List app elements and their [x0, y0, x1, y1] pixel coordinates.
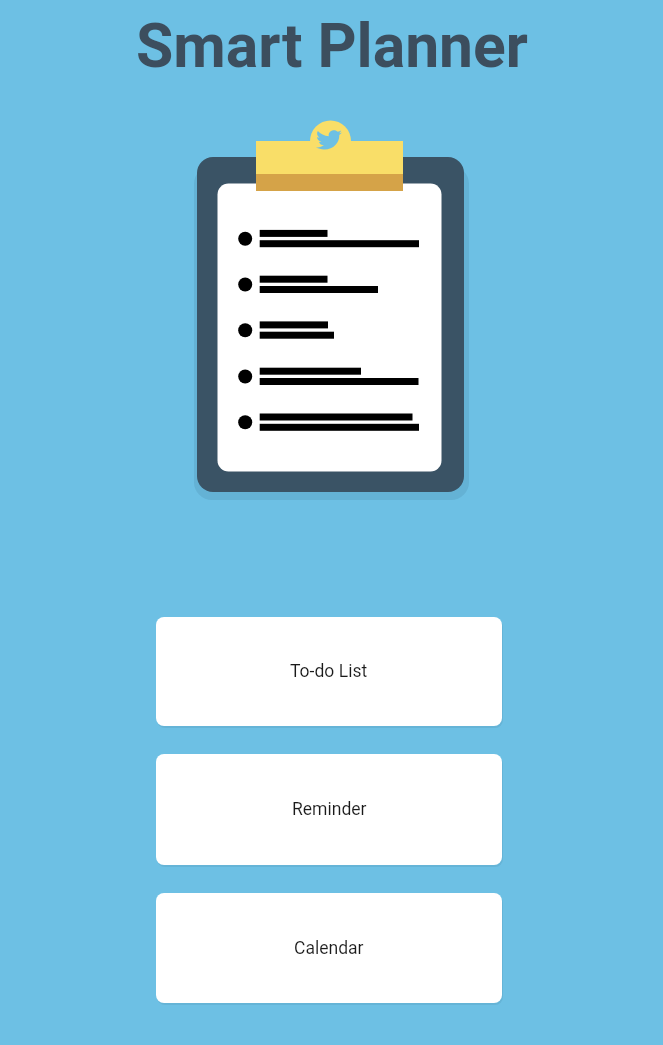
- other: Planner checklist illustration: [185, 110, 485, 510]
- staticText: Smart Planner: [136, 11, 528, 82]
- button[interactable]: To-do List: [156, 617, 502, 726]
- staticText: Reminder: [292, 799, 367, 820]
- staticText: Calendar: [294, 938, 364, 959]
- staticText: To-do List: [290, 661, 368, 682]
- button[interactable]: Reminder: [156, 754, 502, 865]
- button[interactable]: Calendar: [156, 893, 502, 1003]
